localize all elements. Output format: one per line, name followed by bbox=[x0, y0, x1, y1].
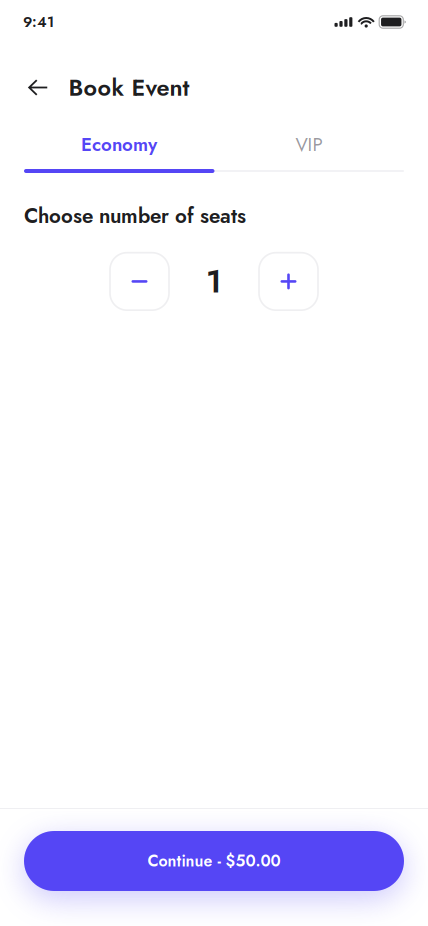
staticText: 1 bbox=[206, 258, 222, 304]
button[interactable]: Decrease number of seats bbox=[110, 253, 169, 310]
button[interactable]: Increase number of seats bbox=[259, 253, 318, 310]
button[interactable]: VIP bbox=[214, 120, 404, 169]
button[interactable]: Back bbox=[17, 67, 58, 108]
staticText: Choose number of seats bbox=[24, 201, 246, 231]
button[interactable]: Economy bbox=[24, 120, 214, 169]
staticText: 9:41 bbox=[23, 11, 54, 33]
staticText: Economy bbox=[81, 131, 157, 158]
staticText: Continue - $50.00 bbox=[147, 849, 280, 872]
staticText: VIP bbox=[295, 131, 322, 158]
button[interactable]: Continue - $50.00 bbox=[24, 831, 404, 891]
staticText: Book Event bbox=[68, 70, 189, 104]
